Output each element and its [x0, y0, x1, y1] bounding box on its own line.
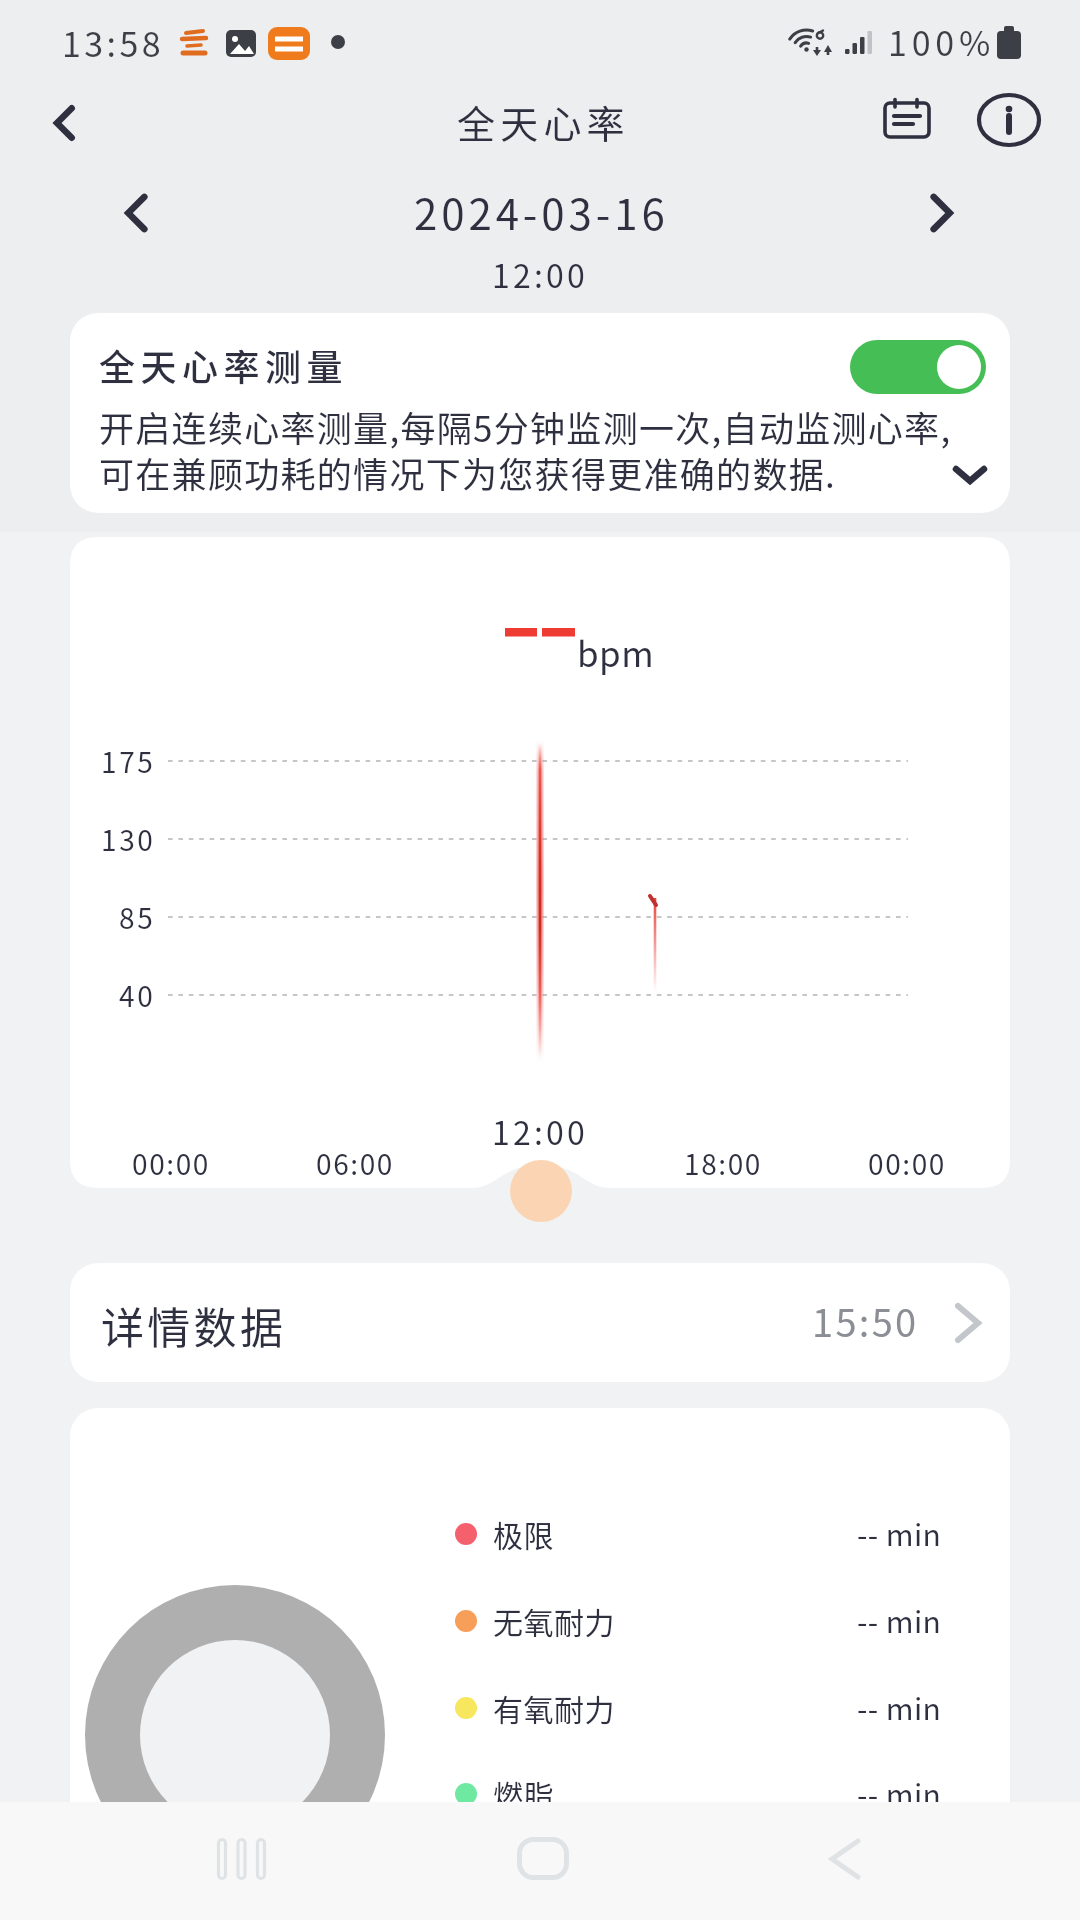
staticText: 00:00 [132, 1143, 210, 1183]
staticText: 130 [101, 819, 156, 859]
staticText: 15:50 [812, 1293, 919, 1348]
button[interactable]: 详情数据 [70, 1263, 1010, 1382]
button[interactable]: Records [869, 81, 947, 159]
staticText: bpm [577, 626, 654, 677]
staticText: 开启连续心率测量,每隔5分钟监测一次,自动监测心率, [99, 401, 952, 452]
button[interactable]: Open detail data [930, 1285, 1006, 1361]
button[interactable]: Home [488, 1803, 598, 1913]
staticText: 06:00 [316, 1143, 394, 1183]
staticText: -- min [857, 1685, 942, 1728]
staticText: 有氧耐力 [493, 1686, 615, 1729]
button[interactable]: Expand description [936, 441, 1004, 509]
staticText: 可在兼顾功耗的情况下为您获得更准确的数据. [99, 447, 837, 498]
staticText: 18:00 [684, 1143, 762, 1183]
staticText: 极限 [493, 1512, 554, 1555]
staticText: 85 [119, 897, 156, 937]
button[interactable]: Back [790, 1804, 900, 1914]
button[interactable]: Toggle all-day heart rate measurement [850, 340, 986, 394]
staticText: -- min [857, 1511, 942, 1554]
staticText: 40 [119, 975, 156, 1015]
staticText: 无氧耐力 [493, 1599, 615, 1642]
staticText: 详情数据 [101, 1294, 287, 1356]
button[interactable]: Recent apps [186, 1804, 296, 1914]
staticText: 100% [888, 17, 996, 66]
staticText: 全天心率测量 [99, 339, 349, 391]
button[interactable]: Info [970, 81, 1048, 159]
staticText: 175 [101, 741, 156, 781]
staticText: 00:00 [868, 1143, 946, 1183]
staticText: -- min [857, 1598, 942, 1641]
staticText: 燃脂 [493, 1772, 554, 1815]
staticText: 12:00 [492, 251, 588, 297]
staticText: 13:58 [62, 18, 164, 67]
staticText: 全天心率 [457, 94, 630, 149]
staticText: -- min [857, 1771, 942, 1814]
button[interactable]: Back [26, 84, 104, 162]
staticText: 12:00 [492, 1108, 588, 1154]
button[interactable]: 全天心率测量 [70, 313, 1010, 513]
staticText: 2024-03-16 [414, 181, 669, 242]
button[interactable]: Previous day [98, 174, 176, 252]
button[interactable]: Next day [902, 174, 980, 252]
